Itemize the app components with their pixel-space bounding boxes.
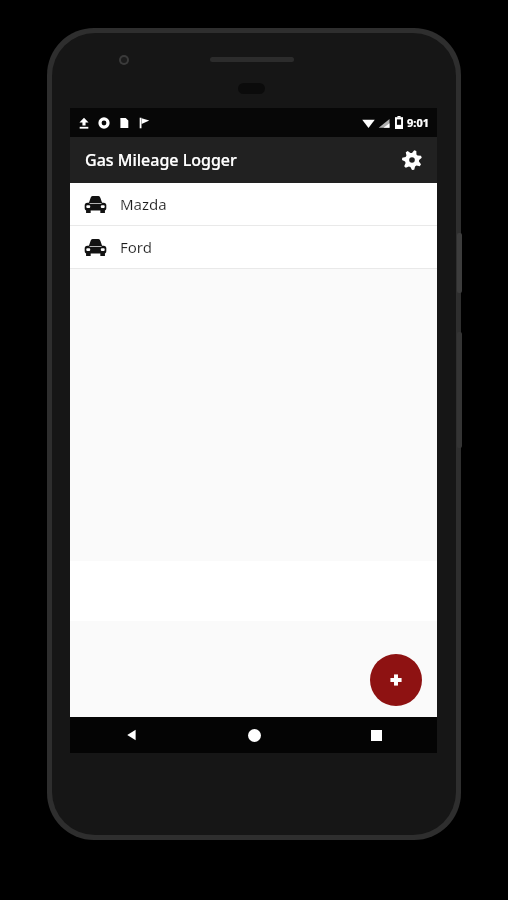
staticText: Gas Mileage Logger [85,149,237,171]
button[interactable]: Settings [396,144,428,176]
button[interactable]: Home [193,717,315,753]
button[interactable]: Add vehicle [370,654,422,706]
button[interactable]: Mazda [70,183,437,225]
button[interactable]: Ford [70,226,437,268]
staticText: 9:01 [407,115,429,130]
staticText: Ford [120,237,152,257]
staticText: Mazda [120,194,167,214]
button[interactable]: Back [70,717,193,753]
button[interactable]: Recent apps [315,717,437,753]
